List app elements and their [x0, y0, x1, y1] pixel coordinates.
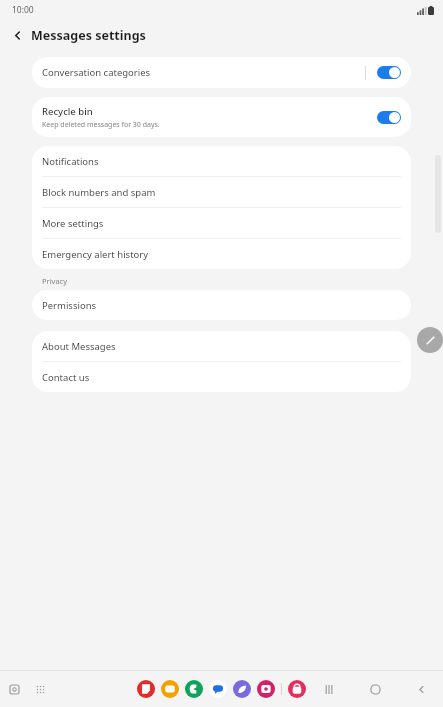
button[interactable]: Recent apps	[4, 679, 24, 699]
staticText: Messages settings	[31, 27, 146, 44]
staticText: 10:00	[12, 4, 34, 16]
button[interactable]: Home	[365, 679, 385, 699]
button[interactable]: Galaxy Store	[288, 680, 306, 698]
button[interactable]: Contact us	[32, 362, 411, 392]
button[interactable]: Toggle on	[377, 66, 401, 79]
button[interactable]: Permissions	[32, 290, 411, 320]
button[interactable]: Notifications	[32, 146, 411, 176]
button[interactable]: Toggle on	[377, 111, 401, 124]
staticText: Conversation categories	[42, 66, 151, 79]
staticText: Block numbers and spam	[42, 186, 156, 199]
staticText: Emergency alert history	[42, 248, 149, 261]
staticText: Permissions	[42, 299, 97, 312]
button[interactable]: About Messages	[32, 331, 411, 361]
staticText: Keep deleted messages for 30 days.	[42, 120, 160, 130]
staticText: More settings	[42, 217, 104, 230]
button[interactable]: More settings	[32, 208, 411, 238]
staticText: About Messages	[42, 340, 116, 353]
staticText: Notifications	[42, 155, 99, 168]
button[interactable]: Back	[7, 25, 27, 45]
button[interactable]: Recents	[319, 679, 339, 699]
button[interactable]: Samsung Notes	[137, 680, 155, 698]
button[interactable]: Edge panel	[417, 327, 443, 353]
button[interactable]: Block numbers and spam	[32, 177, 411, 207]
button[interactable]: Gallery	[257, 680, 275, 698]
staticText: Recycle bin	[42, 105, 93, 118]
button[interactable]: Back	[411, 679, 431, 699]
button[interactable]: Recycle bin	[32, 97, 411, 137]
button[interactable]: Messages	[209, 680, 227, 698]
staticText: Privacy	[42, 276, 68, 286]
button[interactable]: My Files	[161, 680, 179, 698]
button[interactable]: Emergency alert history	[32, 239, 411, 269]
button[interactable]: All apps	[30, 679, 50, 699]
staticText: Contact us	[42, 371, 90, 384]
button[interactable]: Internet	[233, 680, 251, 698]
button[interactable]: Conversation categories	[32, 57, 411, 88]
button[interactable]: Phone	[185, 680, 203, 698]
